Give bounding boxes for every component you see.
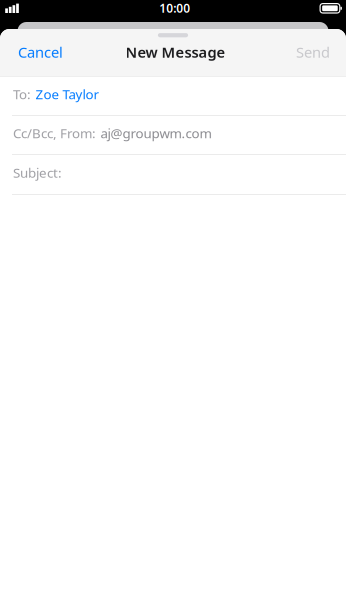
staticText: New Message — [125, 42, 225, 62]
staticText: To: — [13, 85, 31, 103]
staticText: Subject: — [13, 164, 62, 181]
button[interactable]: Send — [294, 35, 332, 69]
staticText: aj@groupwm.com — [100, 124, 211, 142]
staticText: Zoe Taylor — [35, 85, 99, 103]
staticText: 10:00 — [159, 0, 190, 16]
staticText: Cc/Bcc, From: — [13, 124, 96, 142]
staticText: Cancel — [18, 42, 63, 62]
button[interactable]: Cancel — [16, 35, 65, 69]
staticText: Send — [296, 42, 330, 62]
